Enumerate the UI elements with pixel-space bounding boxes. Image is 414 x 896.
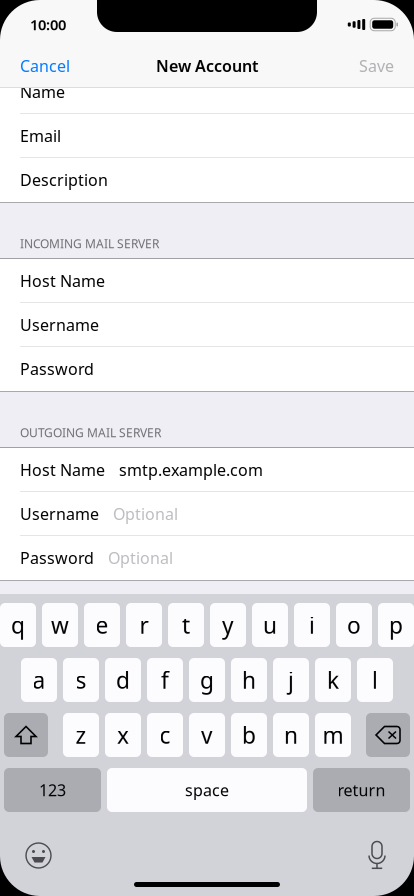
staticText: q: [11, 610, 25, 640]
button[interactable]: n: [273, 713, 309, 757]
staticText: OUTGOING MAIL SERVER: [20, 424, 161, 440]
staticText: n: [284, 720, 298, 750]
button[interactable]: r: [126, 603, 162, 647]
staticText: r: [139, 610, 148, 640]
staticText: t: [182, 610, 190, 640]
staticText: Password: [20, 547, 94, 568]
staticText: e: [95, 610, 108, 640]
button[interactable]: o: [336, 603, 372, 647]
staticText: Username: [20, 314, 99, 335]
staticText: Save: [359, 55, 394, 76]
staticText: z: [75, 720, 86, 750]
button[interactable]: l: [357, 658, 393, 702]
staticText: u: [263, 610, 277, 640]
staticText: b: [242, 720, 256, 750]
button[interactable]: Cancel: [0, 44, 84, 87]
staticText: v: [201, 720, 213, 750]
staticText: return: [337, 779, 385, 801]
button[interactable]: p: [378, 603, 414, 647]
button[interactable]: y: [210, 603, 246, 647]
staticText: New Account: [156, 55, 258, 76]
button[interactable]: Host Name: [0, 448, 414, 492]
button[interactable]: a: [21, 658, 57, 702]
button[interactable]: h: [231, 658, 267, 702]
button[interactable]: z: [63, 713, 99, 757]
button[interactable]: Description: [0, 158, 414, 202]
button[interactable]: x: [105, 713, 141, 757]
button[interactable]: Password: [0, 347, 414, 391]
button[interactable]: m: [315, 713, 351, 757]
staticText: Host Name: [20, 270, 105, 291]
button[interactable]: Email: [0, 114, 414, 158]
button[interactable]: s: [63, 658, 99, 702]
button[interactable]: j: [273, 658, 309, 702]
button[interactable]: f: [147, 658, 183, 702]
staticText: h: [242, 665, 256, 695]
staticText: Email: [20, 125, 61, 146]
staticText: p: [389, 610, 403, 640]
button[interactable]: t: [168, 603, 204, 647]
staticText: s: [75, 665, 86, 695]
staticText: x: [117, 720, 129, 750]
button[interactable]: v: [189, 713, 225, 757]
staticText: m: [322, 720, 343, 750]
staticText: Host Name: [20, 459, 105, 480]
staticText: l: [372, 665, 378, 695]
staticText: i: [309, 610, 315, 640]
staticText: a: [32, 665, 45, 695]
button[interactable]: Shift: [4, 713, 48, 757]
button[interactable]: Delete: [366, 713, 410, 757]
staticText: smtp.example.com: [119, 459, 263, 480]
button[interactable]: c: [147, 713, 183, 757]
button[interactable]: space: [107, 768, 307, 812]
staticText: Username: [20, 503, 99, 524]
button[interactable]: Username: [0, 492, 414, 536]
button[interactable]: Username: [0, 303, 414, 347]
staticText: y: [222, 610, 234, 640]
button[interactable]: w: [42, 603, 78, 647]
staticText: w: [51, 610, 69, 640]
staticText: Name: [20, 81, 65, 102]
staticText: Cancel: [20, 55, 70, 76]
button[interactable]: k: [315, 658, 351, 702]
button[interactable]: u: [252, 603, 288, 647]
button[interactable]: Password: [0, 536, 414, 580]
staticText: f: [161, 665, 169, 695]
staticText: Optional: [108, 547, 173, 568]
button[interactable]: e: [84, 603, 120, 647]
button[interactable]: q: [0, 603, 36, 647]
button[interactable]: b: [231, 713, 267, 757]
staticText: INCOMING MAIL SERVER: [20, 235, 159, 251]
staticText: Password: [20, 358, 94, 379]
staticText: o: [347, 610, 361, 640]
button[interactable]: g: [189, 658, 225, 702]
staticText: k: [327, 665, 339, 695]
staticText: Optional: [113, 503, 178, 524]
staticText: 123: [39, 779, 66, 801]
staticText: c: [159, 720, 170, 750]
staticText: Description: [20, 169, 108, 190]
button[interactable]: Host Name: [0, 259, 414, 303]
staticText: d: [116, 665, 130, 695]
button[interactable]: Emoji keyboard: [0, 836, 52, 875]
button[interactable]: d: [105, 658, 141, 702]
button[interactable]: Name: [0, 88, 414, 114]
button[interactable]: Dictation: [366, 836, 414, 874]
staticText: space: [185, 779, 229, 801]
staticText: 10:00: [30, 15, 66, 34]
staticText: g: [200, 665, 214, 695]
staticText: j: [288, 665, 294, 695]
button[interactable]: return: [313, 768, 410, 812]
button[interactable]: Save: [345, 44, 414, 87]
button[interactable]: 123: [4, 768, 101, 812]
button[interactable]: i: [294, 603, 330, 647]
